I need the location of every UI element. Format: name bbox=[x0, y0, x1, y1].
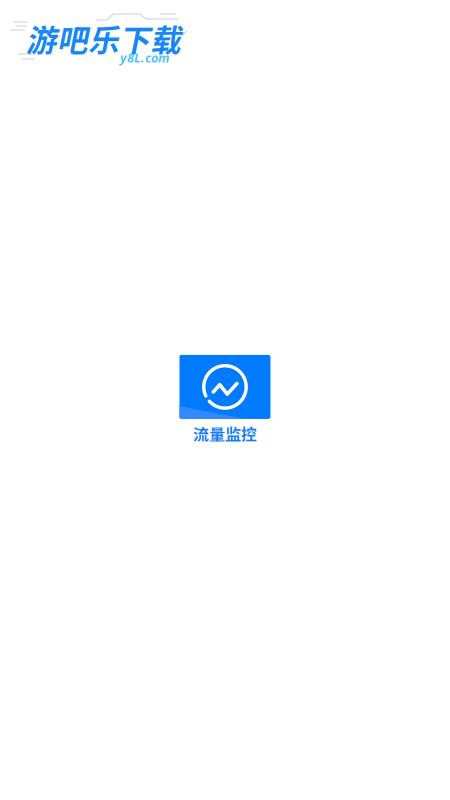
staticText: 游吧乐下载 bbox=[26, 16, 181, 60]
staticText: 流量监控 bbox=[193, 422, 257, 445]
staticText: y8L.com bbox=[120, 49, 169, 66]
